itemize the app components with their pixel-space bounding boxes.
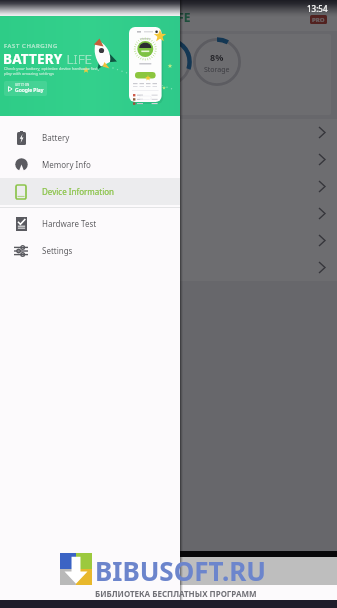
staticText: Check your battery, optimize device hard… [4,66,99,76]
staticText: Display [14,181,45,193]
staticText: Network [14,208,51,220]
staticText: Battery [14,154,45,166]
button[interactable]: Battery [0,124,180,151]
staticText: RAM [160,65,176,75]
staticText: Storage [204,65,230,75]
staticText: БИБЛИОТЕКА БЕСПЛАТНЫХ ПРОГРАММ [95,588,257,599]
staticText: 8% [210,51,224,63]
button[interactable]: Network [0,200,337,227]
staticText: General [14,127,48,139]
button[interactable]: Memory Info [0,151,180,178]
staticText: GET IT ON [15,83,30,87]
staticText: 45% [158,51,177,63]
staticText: LIFE [63,50,92,68]
button[interactable]: General [0,119,337,146]
staticText: BATTERY LIFE [111,9,191,25]
staticText: 13:54 [307,3,328,14]
staticText: Settings [42,245,73,256]
staticText: Battery [42,132,70,143]
staticText: Battery [105,65,129,75]
staticText: FAST CHARGING [4,42,58,50]
button[interactable]: Camera [0,254,337,281]
staticText: Memory Info [42,159,91,170]
staticText: 94% [108,51,127,63]
staticText: BATTERY [3,50,63,68]
button[interactable]: Sensors [0,227,337,254]
staticText: PRO [312,16,325,24]
button[interactable]: PRO [310,15,327,24]
staticText: BIBUSOFT.RU [95,553,266,588]
button[interactable]: Hardware Test [0,210,180,237]
staticText: Hardware Test [42,218,97,229]
button[interactable]: Display [0,173,337,200]
staticText: Sensors [14,235,48,247]
button[interactable]: Battery [0,146,337,173]
staticText: Google Play [15,87,44,94]
staticText: Device Information [42,186,115,197]
button[interactable]: Device Information [0,178,180,205]
button[interactable]: GET IT ON [4,81,47,96]
button[interactable]: Settings [0,237,180,264]
